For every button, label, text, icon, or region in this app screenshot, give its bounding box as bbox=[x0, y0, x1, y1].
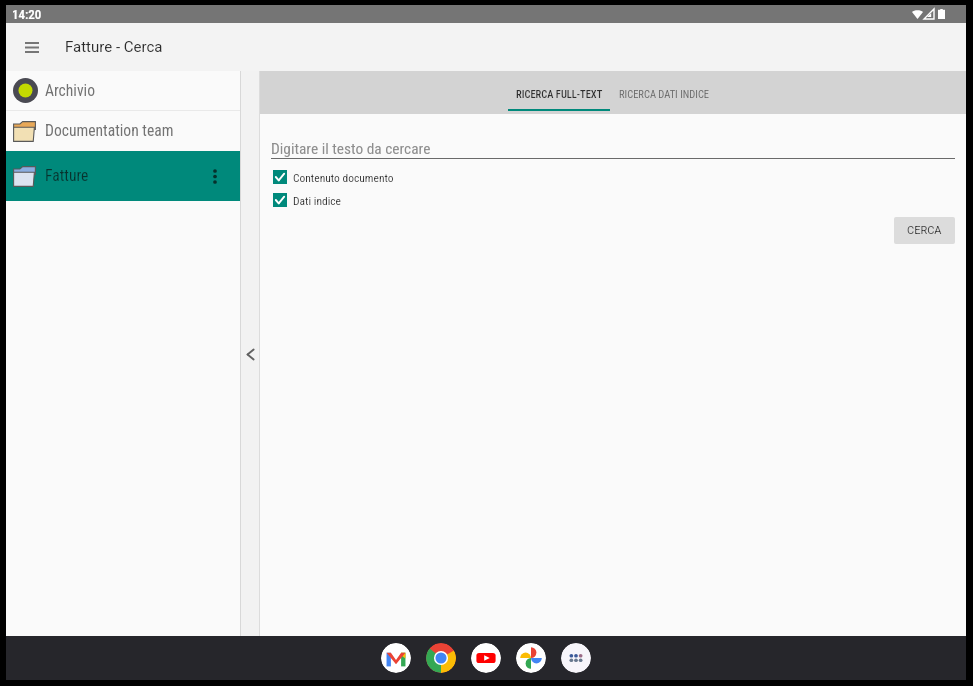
button[interactable]: Contenuto documento bbox=[273, 170, 394, 184]
staticText: Fatture bbox=[45, 167, 89, 185]
button[interactable]: Gmail bbox=[381, 643, 411, 673]
button[interactable]: Dati indice bbox=[273, 193, 342, 207]
staticText: Dati indice bbox=[293, 194, 342, 207]
button[interactable]: Fatture bbox=[6, 151, 240, 201]
button[interactable]: Google Photos bbox=[516, 643, 546, 673]
staticText: RICERCA DATI INDICE bbox=[619, 88, 710, 100]
button[interactable]: Chrome bbox=[426, 643, 456, 673]
button[interactable]: CERCA bbox=[894, 217, 955, 244]
button[interactable]: Menu bbox=[13, 28, 51, 66]
button[interactable]: Collapse panel bbox=[241, 345, 259, 363]
button[interactable]: All apps bbox=[561, 643, 591, 673]
staticText: Digitare il testo da cercare bbox=[271, 140, 431, 158]
button[interactable]: Documentation team bbox=[6, 111, 240, 151]
staticText: Fatture - Cerca bbox=[65, 38, 163, 56]
staticText: 14:20 bbox=[12, 7, 42, 22]
staticText: CERCA bbox=[907, 224, 942, 237]
staticText: Documentation team bbox=[45, 122, 174, 140]
button[interactable]: Archivio bbox=[6, 71, 240, 110]
button[interactable]: RICERCA FULL-TEXT bbox=[508, 71, 610, 114]
staticText: Archivio bbox=[45, 82, 95, 100]
button[interactable]: RICERCA DATI INDICE bbox=[610, 71, 718, 114]
staticText: Contenuto documento bbox=[293, 171, 394, 184]
button[interactable]: YouTube bbox=[471, 643, 501, 673]
button[interactable]: More options bbox=[196, 157, 234, 195]
staticText: RICERCA FULL-TEXT bbox=[516, 88, 603, 100]
